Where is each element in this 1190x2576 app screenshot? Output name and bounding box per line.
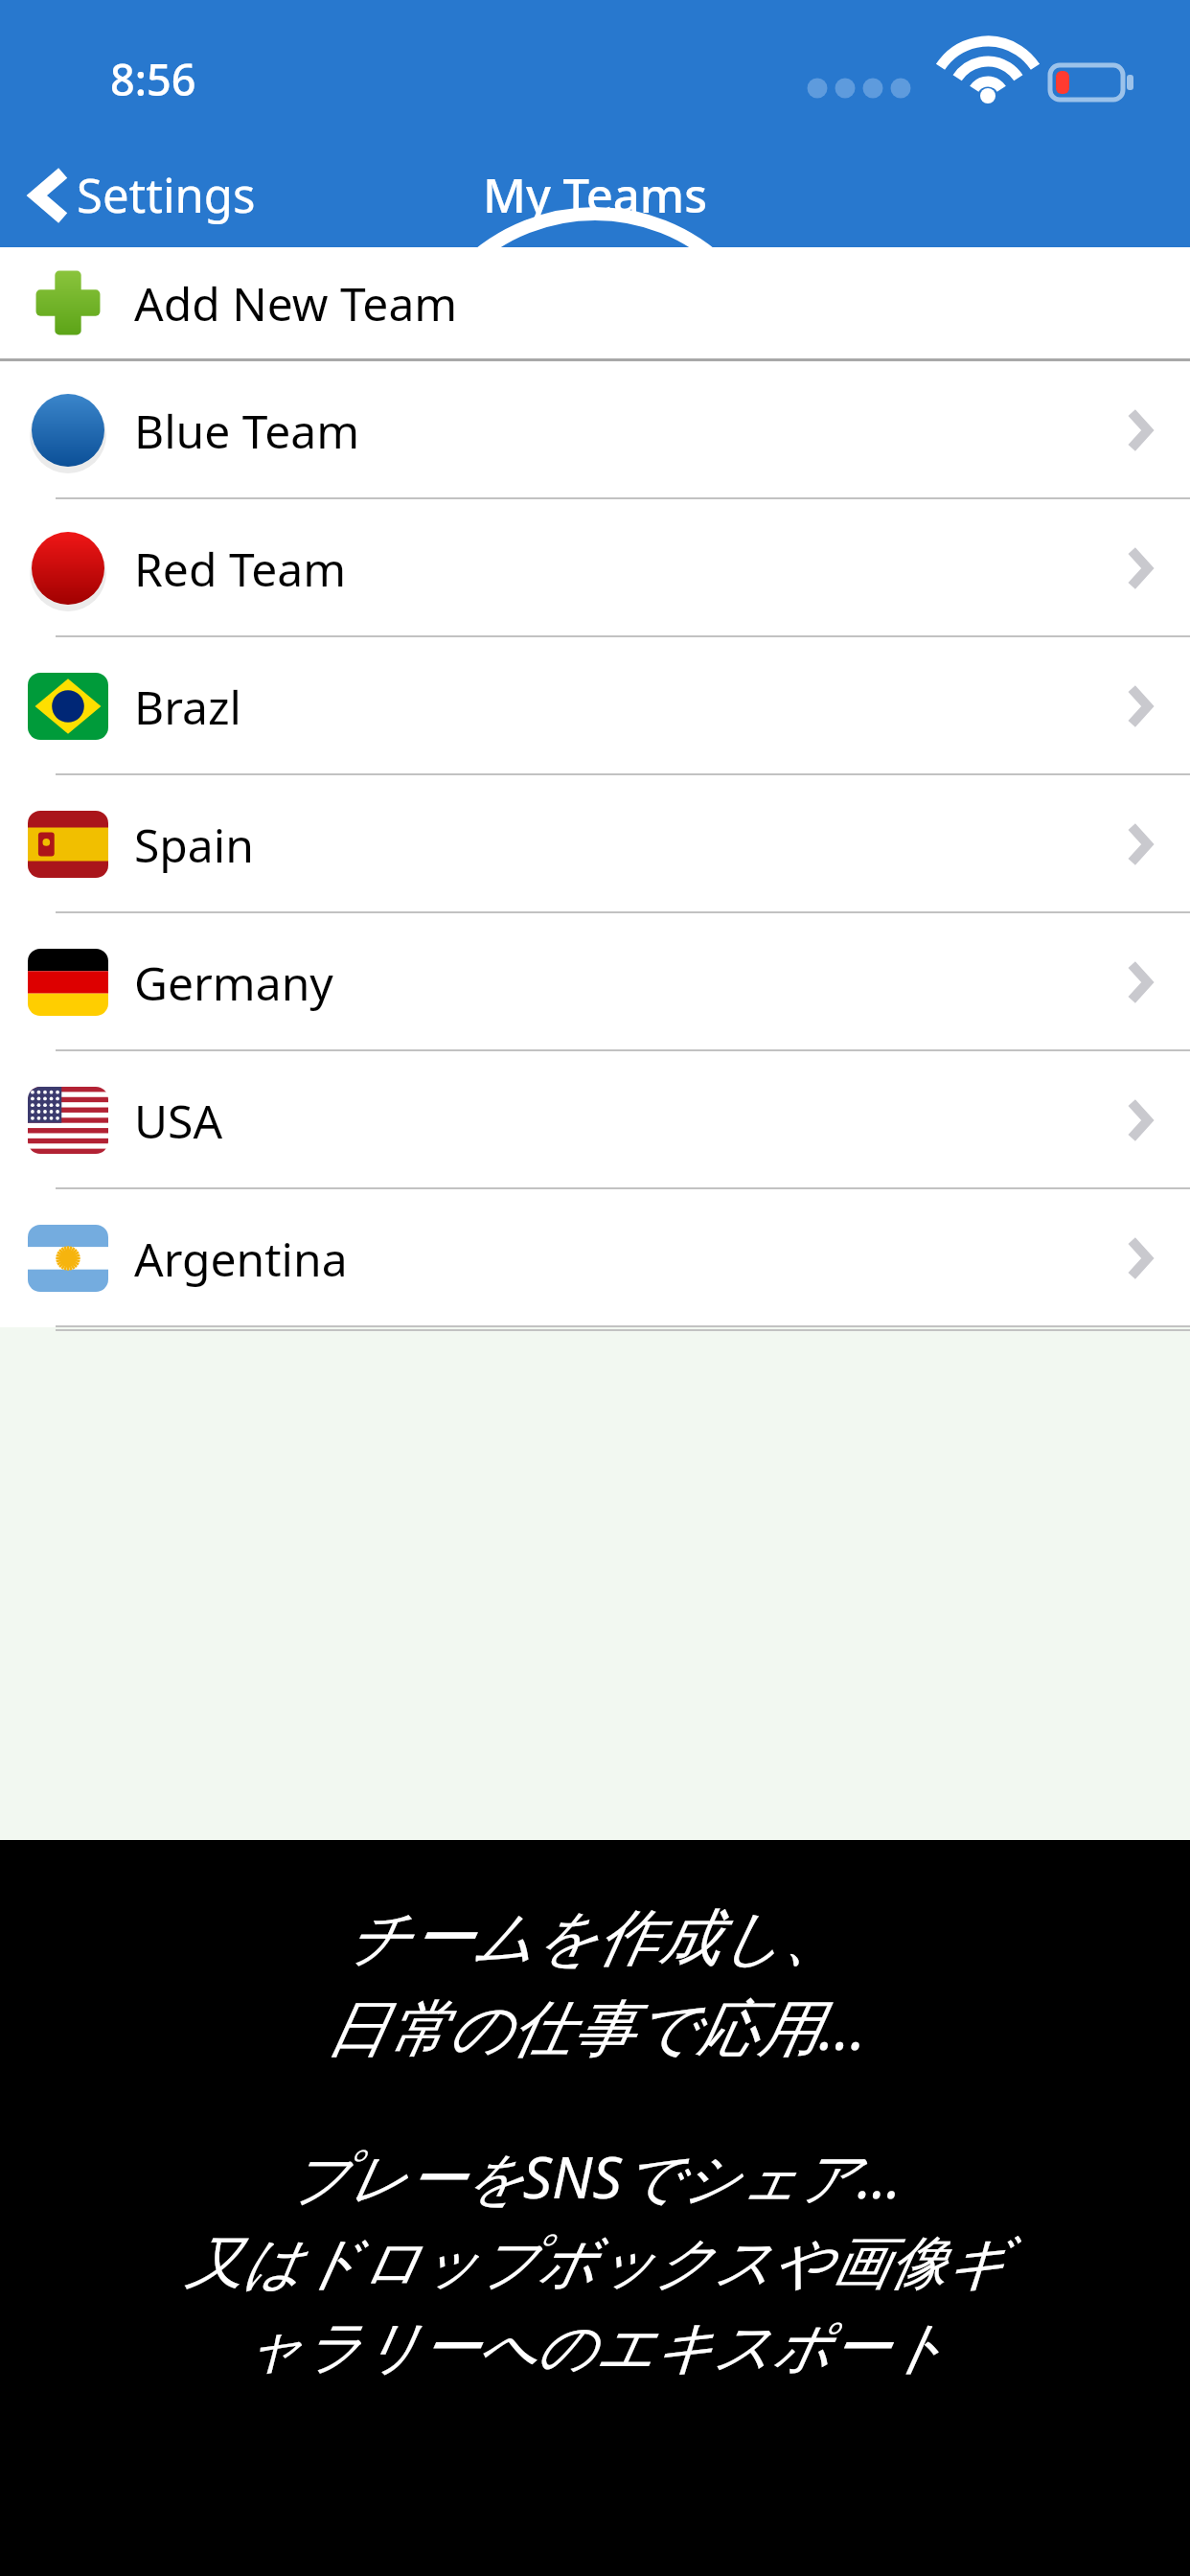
staticText: 8:56 <box>110 50 196 108</box>
staticText: チームを作成し、 日常の仕事で応用... <box>325 1899 866 2068</box>
staticText: Blue Team <box>134 400 360 462</box>
staticText: USA <box>134 1090 223 1152</box>
staticText: Add New Team <box>134 272 458 334</box>
staticText: Germany <box>134 952 333 1014</box>
button[interactable]: Spain <box>0 775 1190 913</box>
button[interactable]: Add New Team <box>0 247 1190 358</box>
button[interactable]: Brazl <box>0 637 1190 775</box>
button[interactable]: USA <box>0 1051 1190 1189</box>
staticText: プレーをSNSでシェア... 又はドロップボックスや画像ギ ャラリーへのエキスポ… <box>185 2137 1005 2384</box>
staticText: Settings <box>77 163 256 227</box>
button[interactable]: Settings <box>0 151 279 239</box>
button[interactable]: Germany <box>0 913 1190 1051</box>
button[interactable]: Argentina <box>0 1189 1190 1327</box>
staticText: Spain <box>134 814 254 876</box>
other: Status icons <box>806 52 1136 105</box>
button[interactable]: Red Team <box>0 499 1190 637</box>
staticText: Argentina <box>134 1228 348 1290</box>
staticText: Brazl <box>134 676 241 738</box>
staticText: My Teams <box>483 163 708 227</box>
button[interactable]: Blue Team <box>0 361 1190 499</box>
staticText: Red Team <box>134 538 347 600</box>
